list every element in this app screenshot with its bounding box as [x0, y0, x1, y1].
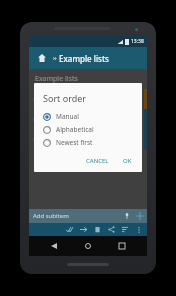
- button[interactable]: Groceries: [29, 89, 147, 109]
- staticText: ››: [53, 54, 57, 62]
- button[interactable]: CANCEL: [82, 155, 113, 167]
- button[interactable]: Home: [79, 237, 97, 255]
- button[interactable]: Share: [104, 223, 118, 236]
- button[interactable]: Add: [133, 209, 147, 223]
- staticText: CANCEL: [86, 157, 109, 165]
- staticText: Example lists: [59, 53, 109, 64]
- button[interactable]: Recents: [113, 237, 131, 255]
- button[interactable]: Move: [76, 223, 90, 236]
- button[interactable]: Select all: [62, 223, 76, 236]
- staticText: OK: [123, 157, 132, 165]
- button[interactable]: Alphabetical: [43, 125, 136, 134]
- button[interactable]: Sort: [118, 223, 132, 236]
- staticText: Travel: [49, 135, 68, 144]
- staticText: 13:38: [131, 38, 144, 45]
- button[interactable]: Travel: [29, 129, 147, 149]
- button[interactable]: OK: [119, 155, 136, 167]
- button[interactable]: Wishlist: [29, 109, 147, 129]
- button[interactable]: Home: [34, 50, 50, 66]
- staticText: Wishlist: [49, 115, 73, 124]
- staticText: Sort order: [43, 92, 87, 104]
- button[interactable]: Back: [45, 237, 63, 255]
- button[interactable]: Newest first: [43, 138, 136, 147]
- staticText: Alphabetical: [56, 125, 94, 134]
- button[interactable]: Delete: [90, 223, 104, 236]
- staticText: Manual: [56, 112, 79, 121]
- staticText: Example lists: [35, 74, 78, 84]
- staticText: Newest first: [56, 138, 93, 147]
- button[interactable]: Voice input: [121, 210, 133, 222]
- staticText: Add subitem: [33, 212, 69, 220]
- button[interactable]: More options: [132, 223, 145, 236]
- button[interactable]: Manual: [43, 112, 136, 121]
- staticText: Groceries: [49, 95, 79, 104]
